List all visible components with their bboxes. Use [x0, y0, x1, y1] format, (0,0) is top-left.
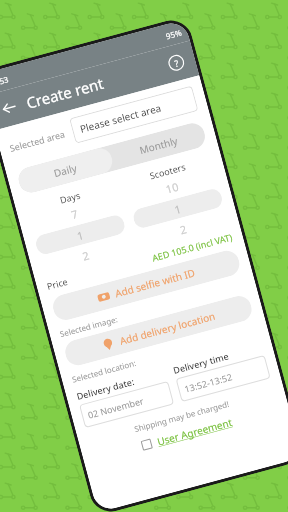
staticText: 13:52-13:52 [183, 370, 233, 395]
button[interactable]: User Agreement [155, 415, 233, 449]
staticText: Delivery date: [75, 375, 136, 402]
button[interactable]: Please select area [69, 86, 198, 144]
staticText: Add selfie with ID [113, 265, 197, 300]
staticText: Scooters [148, 160, 187, 181]
staticText: Create rent [24, 73, 106, 113]
staticText: Selected area [8, 127, 66, 154]
staticText: 1 [75, 227, 86, 243]
staticText: AED 105.0 (incl VAT) [151, 230, 234, 264]
staticText: Please select area [78, 100, 163, 136]
staticText: Delivery time [172, 350, 230, 376]
staticText: Monthly [138, 133, 179, 157]
staticText: Add delivery location [118, 309, 217, 348]
button[interactable]: Add delivery location [62, 293, 254, 368]
staticText: Selected image: [58, 313, 119, 339]
staticText: 95% [164, 27, 183, 41]
staticText: 10 [164, 179, 180, 197]
staticText: 2 [80, 247, 91, 264]
button[interactable]: Help [163, 49, 190, 76]
staticText: Days [58, 189, 82, 206]
staticText: Price [45, 275, 69, 292]
staticText: Selected location: [71, 357, 137, 385]
staticText: Shipping may be charged! [87, 386, 276, 446]
staticText: 2 [178, 221, 189, 237]
staticText: 13:53 [0, 73, 10, 89]
staticText: Daily [52, 160, 79, 180]
button[interactable]: Monthly [108, 120, 208, 170]
button[interactable]: 02 November [79, 381, 174, 428]
button[interactable] [141, 438, 153, 451]
staticText: 02 November [86, 394, 145, 421]
button[interactable]: Back [0, 95, 22, 122]
button[interactable]: Daily [16, 145, 115, 195]
button[interactable]: 13:52-13:52 [176, 355, 271, 402]
button[interactable]: 1 [34, 213, 127, 256]
staticText: ? [173, 56, 180, 69]
staticText: 1 [173, 201, 183, 217]
button[interactable]: Add selfie with ID [50, 248, 242, 323]
staticText: 7 [69, 206, 80, 222]
button[interactable]: 1 [131, 187, 224, 230]
